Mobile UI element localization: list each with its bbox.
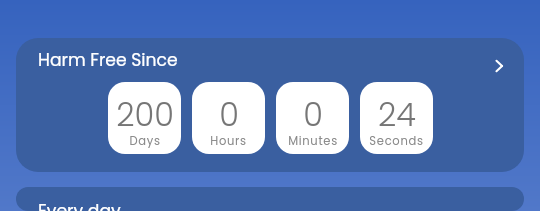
staticText: Every day: [38, 199, 121, 211]
staticText: Minutes: [288, 133, 338, 149]
button[interactable]: Every day: [16, 187, 524, 211]
button[interactable]: 0: [276, 82, 349, 154]
button[interactable]: Harm Free Since: [16, 38, 524, 172]
staticText: Hours: [210, 133, 247, 149]
button[interactable]: 24: [360, 82, 433, 154]
staticText: 200: [116, 92, 174, 137]
button[interactable]: 200: [108, 82, 181, 154]
button[interactable]: 0: [192, 82, 265, 154]
staticText: 24: [378, 92, 416, 137]
button[interactable]: Open harm free details: [486, 53, 512, 79]
staticText: 0: [219, 92, 239, 137]
staticText: Harm Free Since: [38, 48, 178, 72]
staticText: Days: [129, 133, 161, 149]
staticText: Seconds: [369, 133, 424, 149]
staticText: 0: [303, 92, 323, 137]
